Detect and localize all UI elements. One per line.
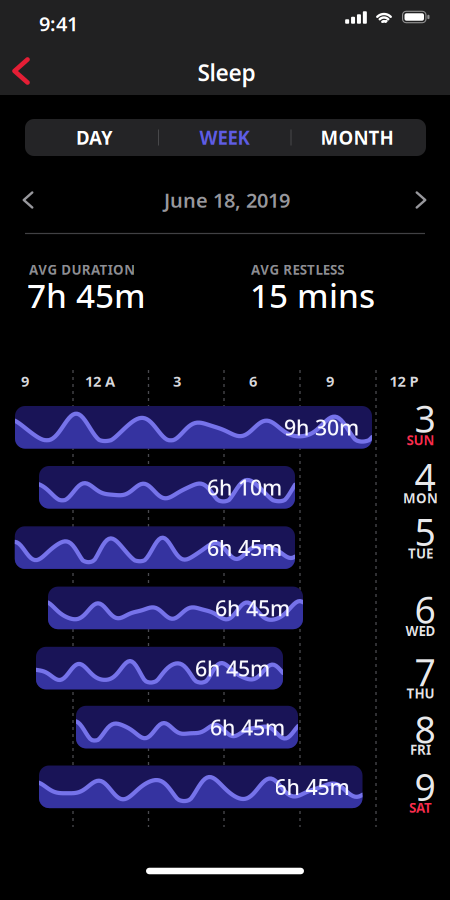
button[interactable]: Next week <box>409 184 433 215</box>
staticText: FRI <box>410 741 431 758</box>
staticText: 5 <box>414 507 435 556</box>
staticText: 6h 45m <box>274 773 349 801</box>
staticText: 3 <box>173 371 181 391</box>
staticText: 12 A <box>85 371 115 391</box>
staticText: 7 <box>414 647 435 696</box>
staticText: June 18, 2019 <box>164 187 290 213</box>
button[interactable]: DAY <box>29 119 159 156</box>
staticText: 6h 45m <box>215 594 290 622</box>
staticText: 9 <box>414 762 435 811</box>
staticText: 6h 45m <box>207 533 282 562</box>
staticText: 6 <box>414 584 435 634</box>
staticText: 4 <box>414 452 435 501</box>
staticText: 3 <box>414 393 435 443</box>
staticText: 15 mins <box>250 273 375 317</box>
staticText: AVG DURATION <box>29 261 135 278</box>
button[interactable]: Previous week <box>16 184 40 215</box>
staticText: 9:41 <box>39 10 78 37</box>
staticText: MON <box>403 489 438 507</box>
staticText: 9 <box>326 371 334 391</box>
staticText: TUE <box>408 544 433 562</box>
staticText: THU <box>406 684 434 702</box>
staticText: 6h 10m <box>207 473 282 501</box>
staticText: 6h 45m <box>210 713 285 741</box>
button[interactable]: Back <box>6 51 35 90</box>
staticText: SAT <box>409 799 432 816</box>
staticText: 7h 45m <box>27 273 146 317</box>
staticText: Sleep <box>197 57 255 87</box>
staticText: DAY <box>76 125 113 150</box>
staticText: MONTH <box>320 125 393 150</box>
staticText: 12 P <box>389 371 418 391</box>
button[interactable]: WEEK <box>159 119 289 156</box>
staticText: 6 <box>249 371 257 391</box>
staticText: 8 <box>414 704 435 754</box>
staticText: SUN <box>406 431 434 449</box>
staticText: 9 <box>21 371 29 391</box>
staticText: 9h 30m <box>284 413 359 441</box>
staticText: 6h 45m <box>195 654 270 682</box>
staticText: WEEK <box>199 125 249 150</box>
staticText: AVG RESTLESS <box>251 261 344 278</box>
staticText: WED <box>405 622 435 640</box>
button[interactable]: MONTH <box>292 119 422 156</box>
